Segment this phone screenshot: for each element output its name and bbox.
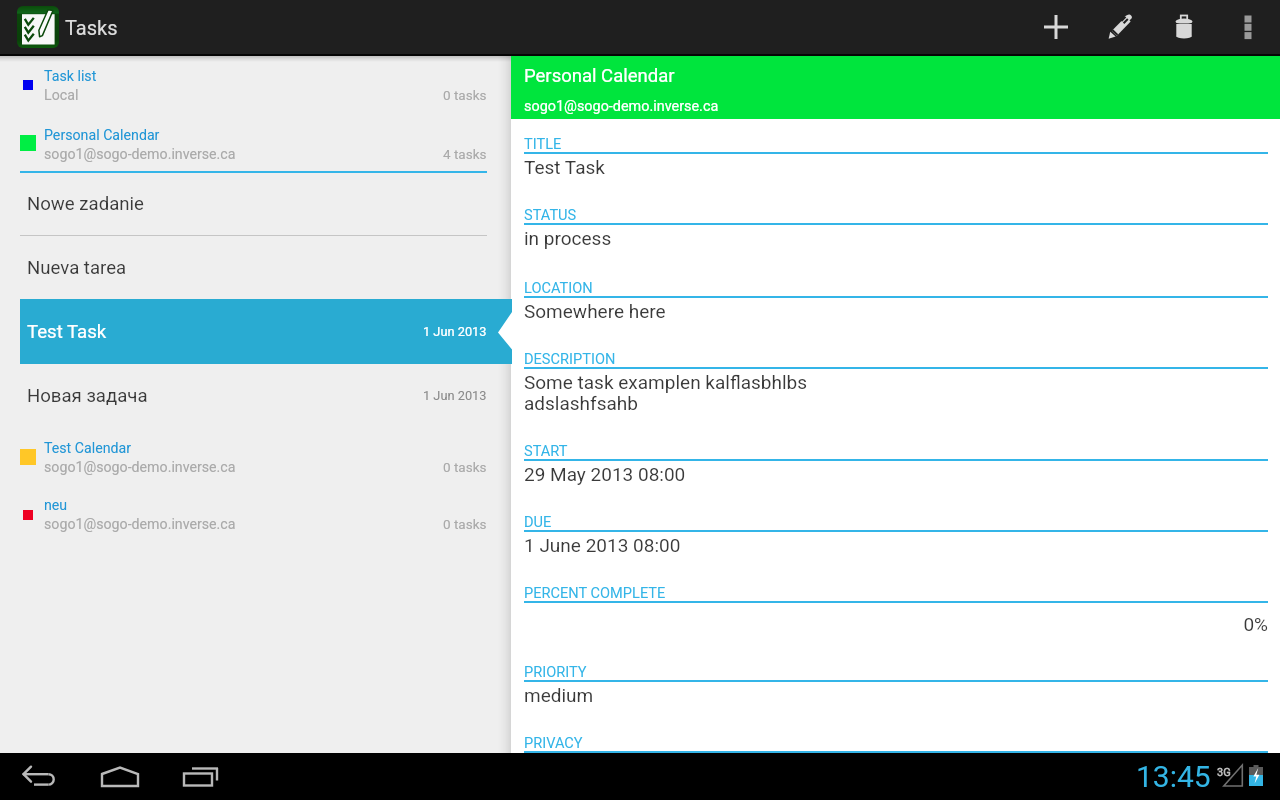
staticText: 0 tasks <box>443 459 487 475</box>
staticText: 3G <box>1217 766 1231 779</box>
staticText: 1 June 2013 08:00 <box>524 534 1268 556</box>
button[interactable]: Add <box>1024 0 1088 54</box>
button[interactable]: Test Task <box>0 299 511 364</box>
staticText: STATUS <box>524 206 577 223</box>
staticText: sogo1@sogo-demo.inverse.ca <box>44 146 236 163</box>
staticText: Nowe zadanie <box>27 193 144 215</box>
staticText: Test Task <box>27 321 107 343</box>
staticText: Nueva tarea <box>27 257 127 279</box>
staticText: Test Task <box>524 156 1268 178</box>
staticText: 0% <box>524 613 1268 635</box>
staticText: Some task examplen kalflasbhlbs adslashf… <box>524 371 1268 415</box>
button[interactable]: neu <box>0 488 511 540</box>
staticText: Local <box>44 87 79 104</box>
button[interactable]: Nueva tarea <box>0 236 511 299</box>
staticText: 0 tasks <box>443 87 487 103</box>
staticText: DESCRIPTION <box>524 350 616 367</box>
staticText: sogo1@sogo-demo.inverse.ca <box>524 98 719 115</box>
staticText: LOCATION <box>524 279 593 296</box>
staticText: Tasks <box>65 16 118 39</box>
button[interactable]: Recents <box>173 753 229 800</box>
button[interactable]: Edit <box>1088 0 1152 54</box>
staticText: Somewhere here <box>524 300 1268 322</box>
staticText: 1 Jun 2013 <box>423 388 487 403</box>
staticText: Test Calendar <box>44 440 132 457</box>
staticText: 0 tasks <box>443 516 487 532</box>
staticText: in process <box>524 227 1268 249</box>
button[interactable]: Back <box>12 753 68 800</box>
staticText: PERCENT COMPLETE <box>524 584 666 601</box>
button[interactable]: Home <box>92 753 148 800</box>
button[interactable]: Personal Calendar <box>0 118 511 170</box>
staticText: sogo1@sogo-demo.inverse.ca <box>44 459 236 476</box>
staticText: 4 tasks <box>443 146 487 162</box>
staticText: PRIORITY <box>524 663 587 680</box>
staticText: Task list <box>44 68 97 85</box>
staticText: PRIVACY <box>524 734 583 751</box>
staticText: DUE <box>524 513 552 530</box>
staticText: 1 Jun 2013 <box>423 324 487 339</box>
staticText: medium <box>524 684 1268 706</box>
staticText: Personal Calendar <box>524 65 675 87</box>
button[interactable]: Task list <box>0 59 511 115</box>
staticText: START <box>524 442 568 459</box>
button[interactable]: Nowe zadanie <box>0 172 511 235</box>
staticText: neu <box>44 497 68 514</box>
staticText: Personal Calendar <box>44 127 160 144</box>
button[interactable]: Новая задача <box>0 363 511 428</box>
button[interactable]: Delete <box>1152 0 1216 54</box>
staticText: 13:45 <box>1136 759 1211 794</box>
staticText: 29 May 2013 08:00 <box>524 463 1268 485</box>
button[interactable]: More options <box>1216 0 1280 54</box>
staticText: Новая задача <box>27 385 148 407</box>
button[interactable]: Test Calendar <box>0 431 511 483</box>
staticText: sogo1@sogo-demo.inverse.ca <box>44 516 236 533</box>
staticText: TITLE <box>524 135 562 152</box>
